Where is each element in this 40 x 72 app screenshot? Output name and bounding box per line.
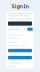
staticText: Sign In — [11, 3, 28, 10]
